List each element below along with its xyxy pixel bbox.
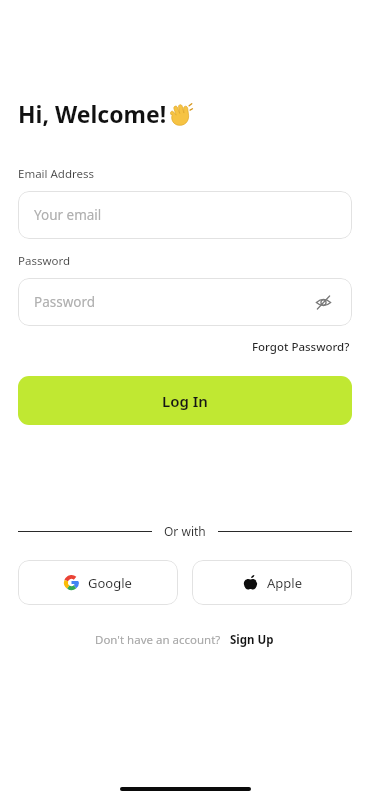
button[interactable]: Google — [18, 560, 178, 605]
button[interactable]: Sign Up — [228, 629, 276, 651]
staticText: Password — [18, 253, 71, 269]
staticText: Google — [88, 574, 132, 592]
staticText: Log In — [162, 391, 208, 411]
staticText: Apple — [267, 574, 302, 592]
staticText: Forgot Password? — [252, 339, 350, 355]
staticText: Don't have an account? — [95, 632, 221, 648]
button[interactable]: Forgot Password? — [250, 336, 352, 358]
button[interactable]: Show password — [310, 289, 336, 315]
button[interactable]: Your email — [18, 191, 352, 239]
staticText: Your email — [34, 206, 336, 224]
button[interactable]: Password — [18, 278, 352, 326]
staticText: Sign Up — [230, 632, 274, 648]
staticText: Password — [34, 293, 310, 311]
staticText: Or with — [164, 523, 206, 539]
staticText: Hi, Welcome! — [18, 98, 167, 129]
button[interactable]: Apple — [192, 560, 352, 605]
button[interactable]: Log In — [18, 376, 352, 425]
staticText: Email Address — [18, 166, 95, 182]
